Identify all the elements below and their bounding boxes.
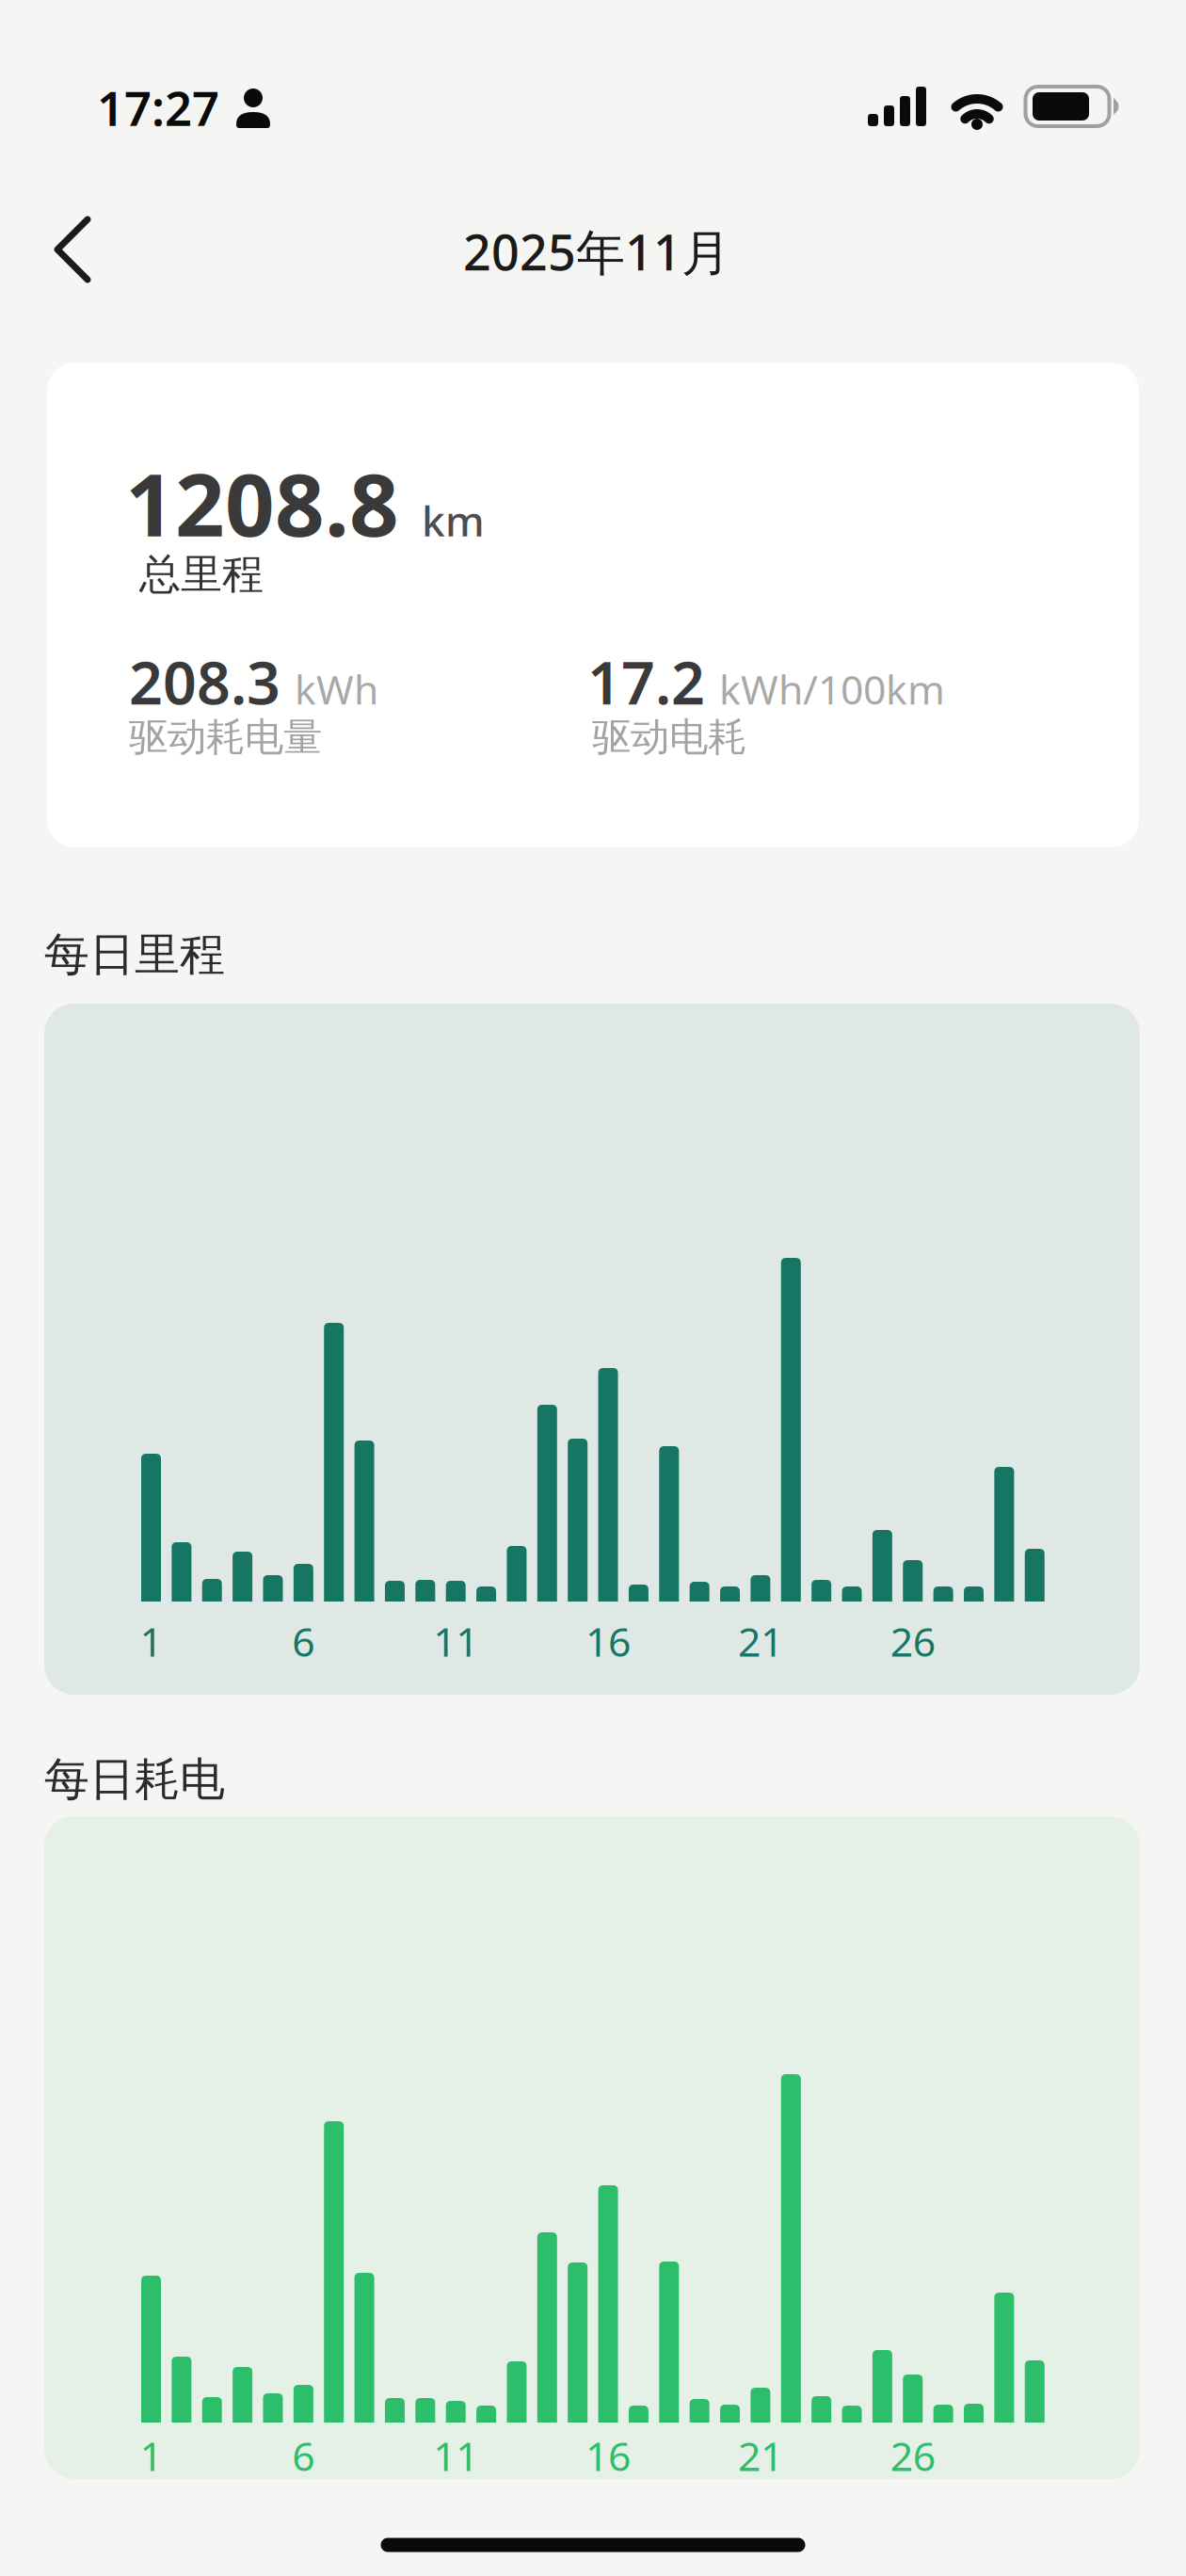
staticText: 17:27	[97, 76, 219, 139]
staticText: 1	[140, 2429, 162, 2482]
staticText: 26	[890, 2429, 935, 2482]
staticText: 21	[738, 2429, 783, 2482]
staticText: 208.3	[129, 642, 280, 721]
staticText: 21	[738, 1614, 783, 1668]
staticText: 16	[585, 2429, 631, 2482]
staticText: km	[422, 493, 485, 548]
staticText: 2025年11月	[463, 219, 730, 284]
staticText: 驱动耗电量	[129, 713, 322, 761]
staticText: 驱动电耗	[592, 713, 746, 761]
staticText: 6	[292, 2429, 315, 2482]
staticText: 6	[292, 1614, 315, 1668]
staticText: kWh/100km	[719, 662, 945, 716]
staticText: 总里程	[139, 549, 264, 600]
button[interactable]	[30, 207, 115, 292]
staticText: 26	[890, 1614, 935, 1668]
staticText: 16	[585, 1614, 631, 1668]
staticText: 每日耗电	[44, 1752, 225, 1807]
staticText: 11	[433, 2429, 478, 2482]
staticText: 1	[140, 1614, 162, 1668]
staticText: 1208.8	[125, 445, 399, 560]
staticText: kWh	[295, 662, 378, 716]
staticText: 17.2	[587, 642, 705, 721]
staticText: 每日里程	[44, 927, 225, 982]
staticText: 11	[433, 1614, 478, 1668]
